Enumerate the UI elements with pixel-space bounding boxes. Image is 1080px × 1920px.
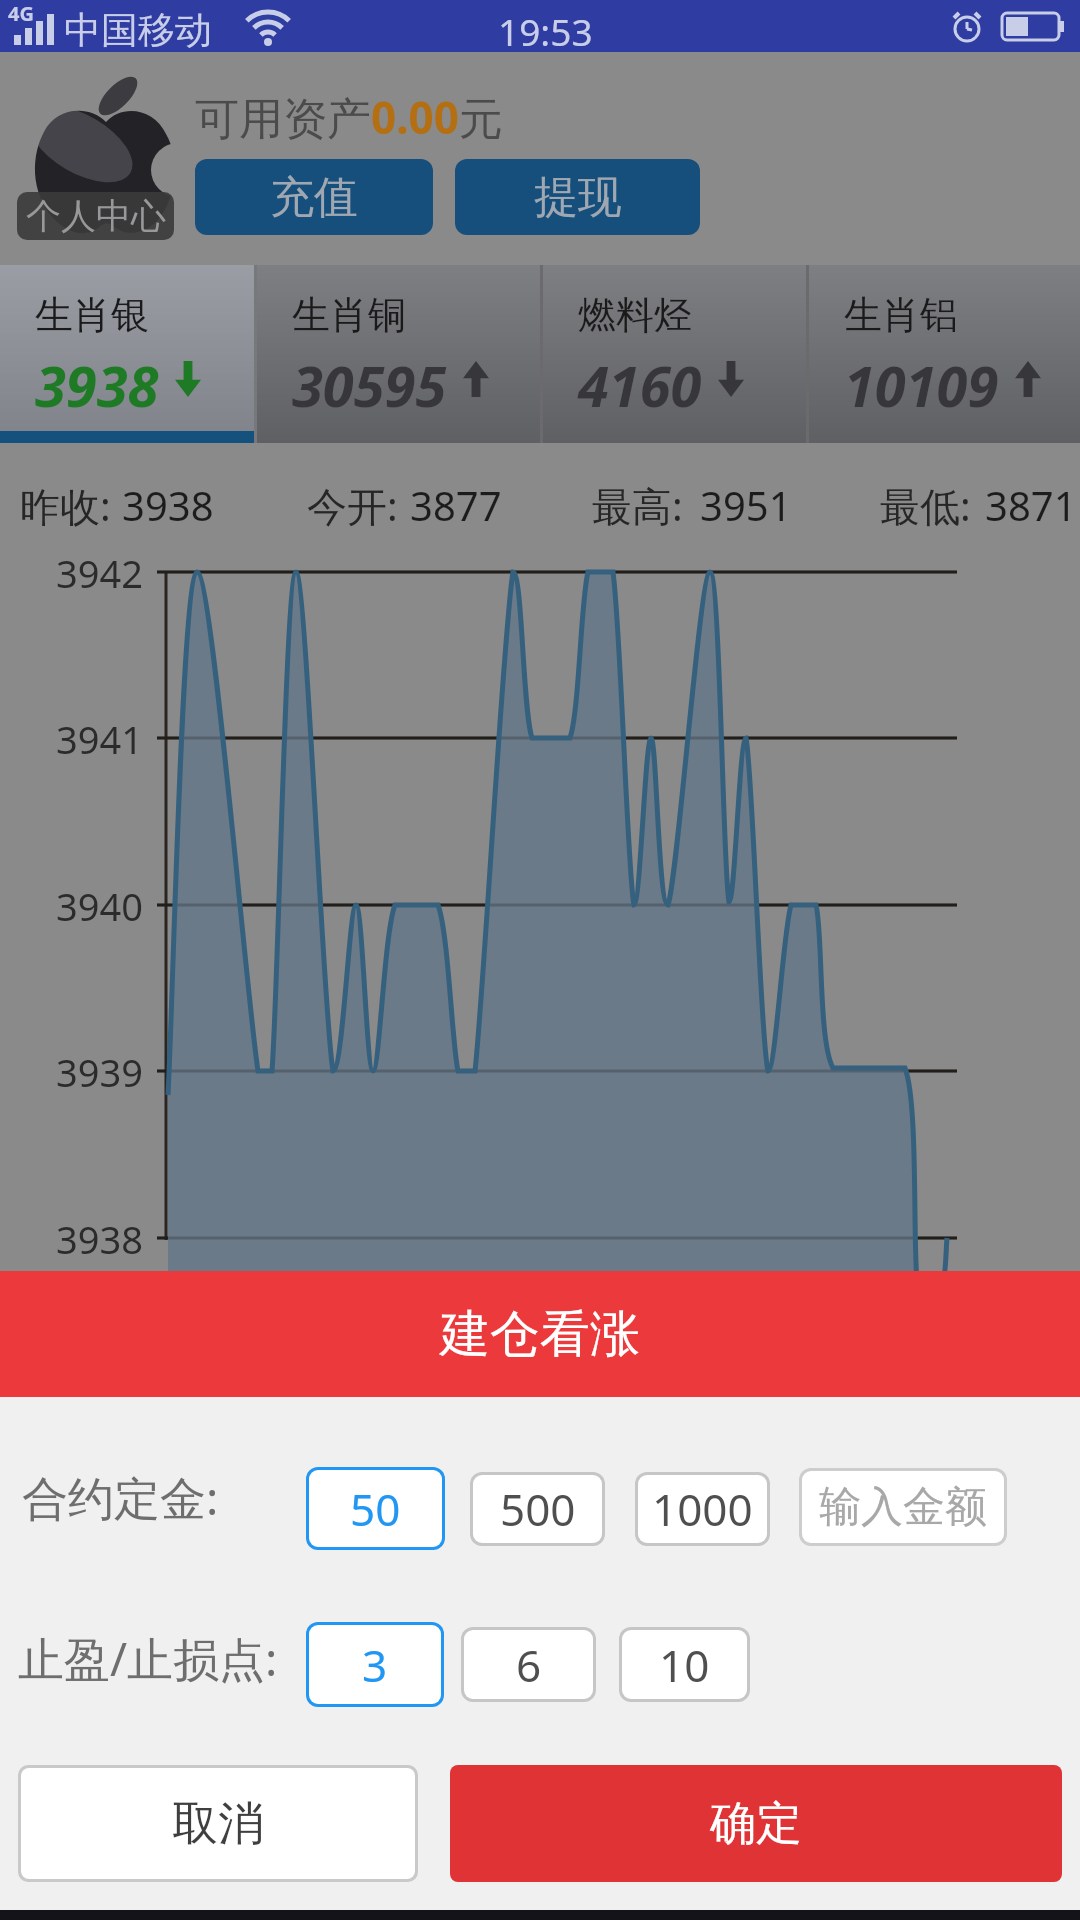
staticText: 10 <box>659 1635 710 1695</box>
button[interactable]: 充值 <box>195 159 433 235</box>
staticText: 3 <box>362 1635 388 1695</box>
staticText: 1000 <box>652 1479 753 1539</box>
staticText: 合约定金: <box>22 1466 219 1529</box>
button[interactable]: 50 <box>306 1467 445 1550</box>
button[interactable]: 确定 <box>450 1765 1062 1882</box>
staticText: 4160 <box>578 347 702 423</box>
staticText: 3938 <box>56 1213 143 1263</box>
button[interactable]: 生肖铜 <box>257 265 540 443</box>
staticText: 今开: <box>307 478 398 533</box>
staticText: 10109 <box>844 347 999 423</box>
staticText: 确定 <box>710 1795 802 1853</box>
staticText: 3941 <box>56 713 143 763</box>
staticText: 昨收: <box>20 478 111 533</box>
button[interactable]: 输入金额 <box>799 1468 1007 1546</box>
staticText: 30595 <box>292 347 447 423</box>
button[interactable]: 取消 <box>18 1765 418 1882</box>
staticText: 生肖银 <box>35 291 149 339</box>
button[interactable]: 10 <box>619 1627 750 1702</box>
staticText: 取消 <box>172 1795 264 1853</box>
button[interactable]: 提现 <box>455 159 700 235</box>
staticText: 燃料烃 <box>578 291 692 339</box>
staticText: 3938 <box>122 478 214 532</box>
staticText: 500 <box>500 1479 576 1539</box>
staticText: 生肖铝 <box>844 291 958 339</box>
button[interactable]: 生肖银 <box>0 265 254 443</box>
staticText: 3942 <box>56 547 143 597</box>
staticText: 3938 <box>35 347 159 423</box>
staticText: 建仓看涨 <box>440 1303 640 1366</box>
staticText: 4G <box>8 0 34 27</box>
staticText: 3877 <box>410 478 502 532</box>
staticText: 个人中心 <box>26 194 166 238</box>
staticText: 止盈/止损点: <box>18 1627 278 1690</box>
button[interactable]: 生肖铝 <box>809 265 1080 443</box>
staticText: 3871 <box>985 478 1077 532</box>
staticText: 可用资产0.00元 <box>195 87 503 147</box>
staticText: 19:53 <box>498 6 593 56</box>
staticText: 6 <box>516 1635 542 1695</box>
button[interactable]: 6 <box>461 1627 596 1702</box>
button[interactable] <box>18 58 178 240</box>
staticText: 中国移动 <box>64 7 212 54</box>
staticText: 充值 <box>270 170 358 225</box>
staticText: 3940 <box>56 880 143 930</box>
button[interactable]: 1000 <box>635 1472 770 1546</box>
staticText: 3951 <box>700 478 792 532</box>
staticText: 提现 <box>534 170 622 225</box>
staticText: 50 <box>350 1479 401 1539</box>
button[interactable]: 燃料烃 <box>543 265 806 443</box>
staticText: 最高: <box>592 478 683 533</box>
staticText: 生肖铜 <box>292 291 406 339</box>
staticText: 3939 <box>56 1046 143 1096</box>
button[interactable]: 500 <box>470 1472 605 1546</box>
staticText: 输入金额 <box>819 1481 987 1534</box>
button[interactable]: 建仓看涨 <box>0 1271 1080 1397</box>
staticText: 最低: <box>880 478 971 533</box>
button[interactable]: 3 <box>306 1622 444 1707</box>
